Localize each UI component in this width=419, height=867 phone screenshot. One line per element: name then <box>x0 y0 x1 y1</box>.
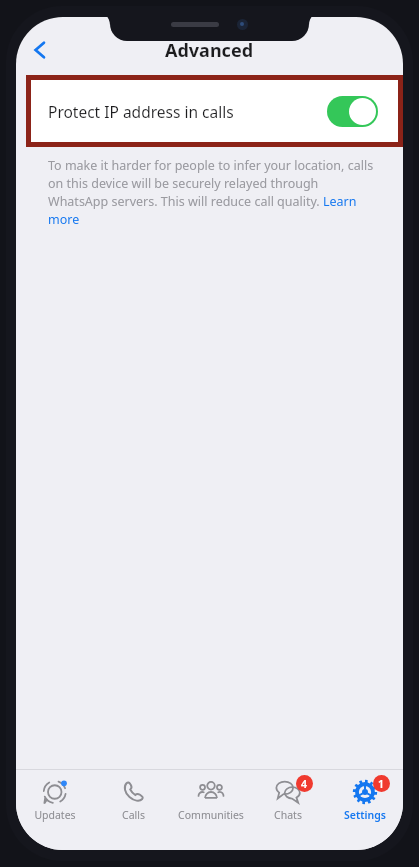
button[interactable]: Communities <box>172 770 249 822</box>
button[interactable]: Updates <box>16 770 94 822</box>
button[interactable]: Calls <box>94 770 172 822</box>
staticText: Calls <box>122 808 145 822</box>
staticText: Updates <box>34 808 76 822</box>
staticText: 4 <box>301 777 308 791</box>
staticText: Communities <box>178 808 244 822</box>
staticText: Protect IP address in calls <box>48 101 234 122</box>
staticText: Chats <box>274 808 302 822</box>
staticText: To make it harder for people to infer yo… <box>48 157 381 228</box>
button[interactable]: Protect IP address in calls <box>31 80 398 142</box>
button[interactable]: Protect IP address toggle <box>327 96 378 127</box>
staticText: Advanced <box>165 38 254 63</box>
button[interactable]: 1 <box>326 770 403 822</box>
staticText: 1 <box>378 777 385 791</box>
button[interactable]: 4 <box>249 770 326 822</box>
button[interactable]: Back <box>18 28 62 72</box>
staticText: Settings <box>344 808 386 822</box>
